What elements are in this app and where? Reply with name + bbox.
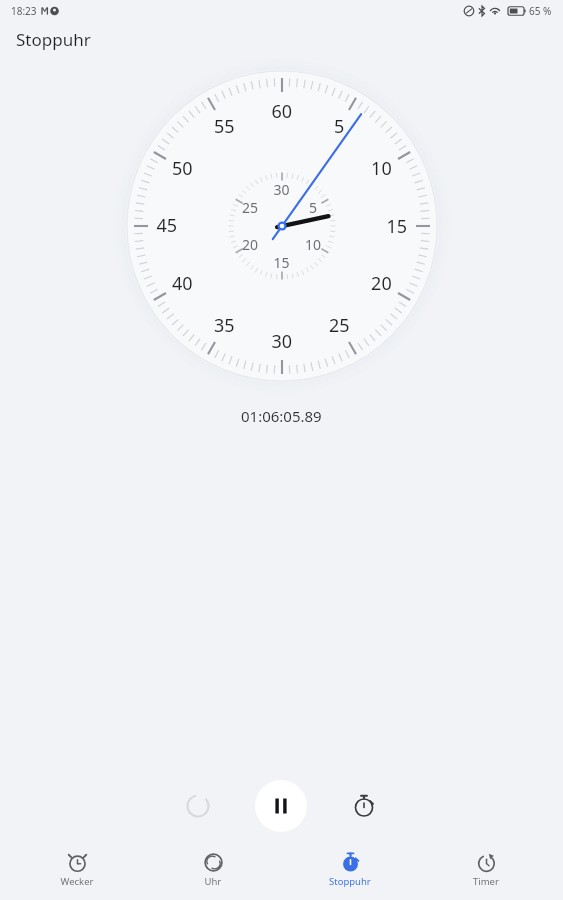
button[interactable] [153, 848, 273, 892]
button[interactable] [17, 848, 137, 892]
button[interactable] [290, 848, 410, 892]
button[interactable] [426, 848, 546, 892]
button[interactable]: Pause [255, 780, 307, 832]
button[interactable]: Reset [175, 783, 221, 829]
button[interactable]: Lap [341, 783, 387, 829]
